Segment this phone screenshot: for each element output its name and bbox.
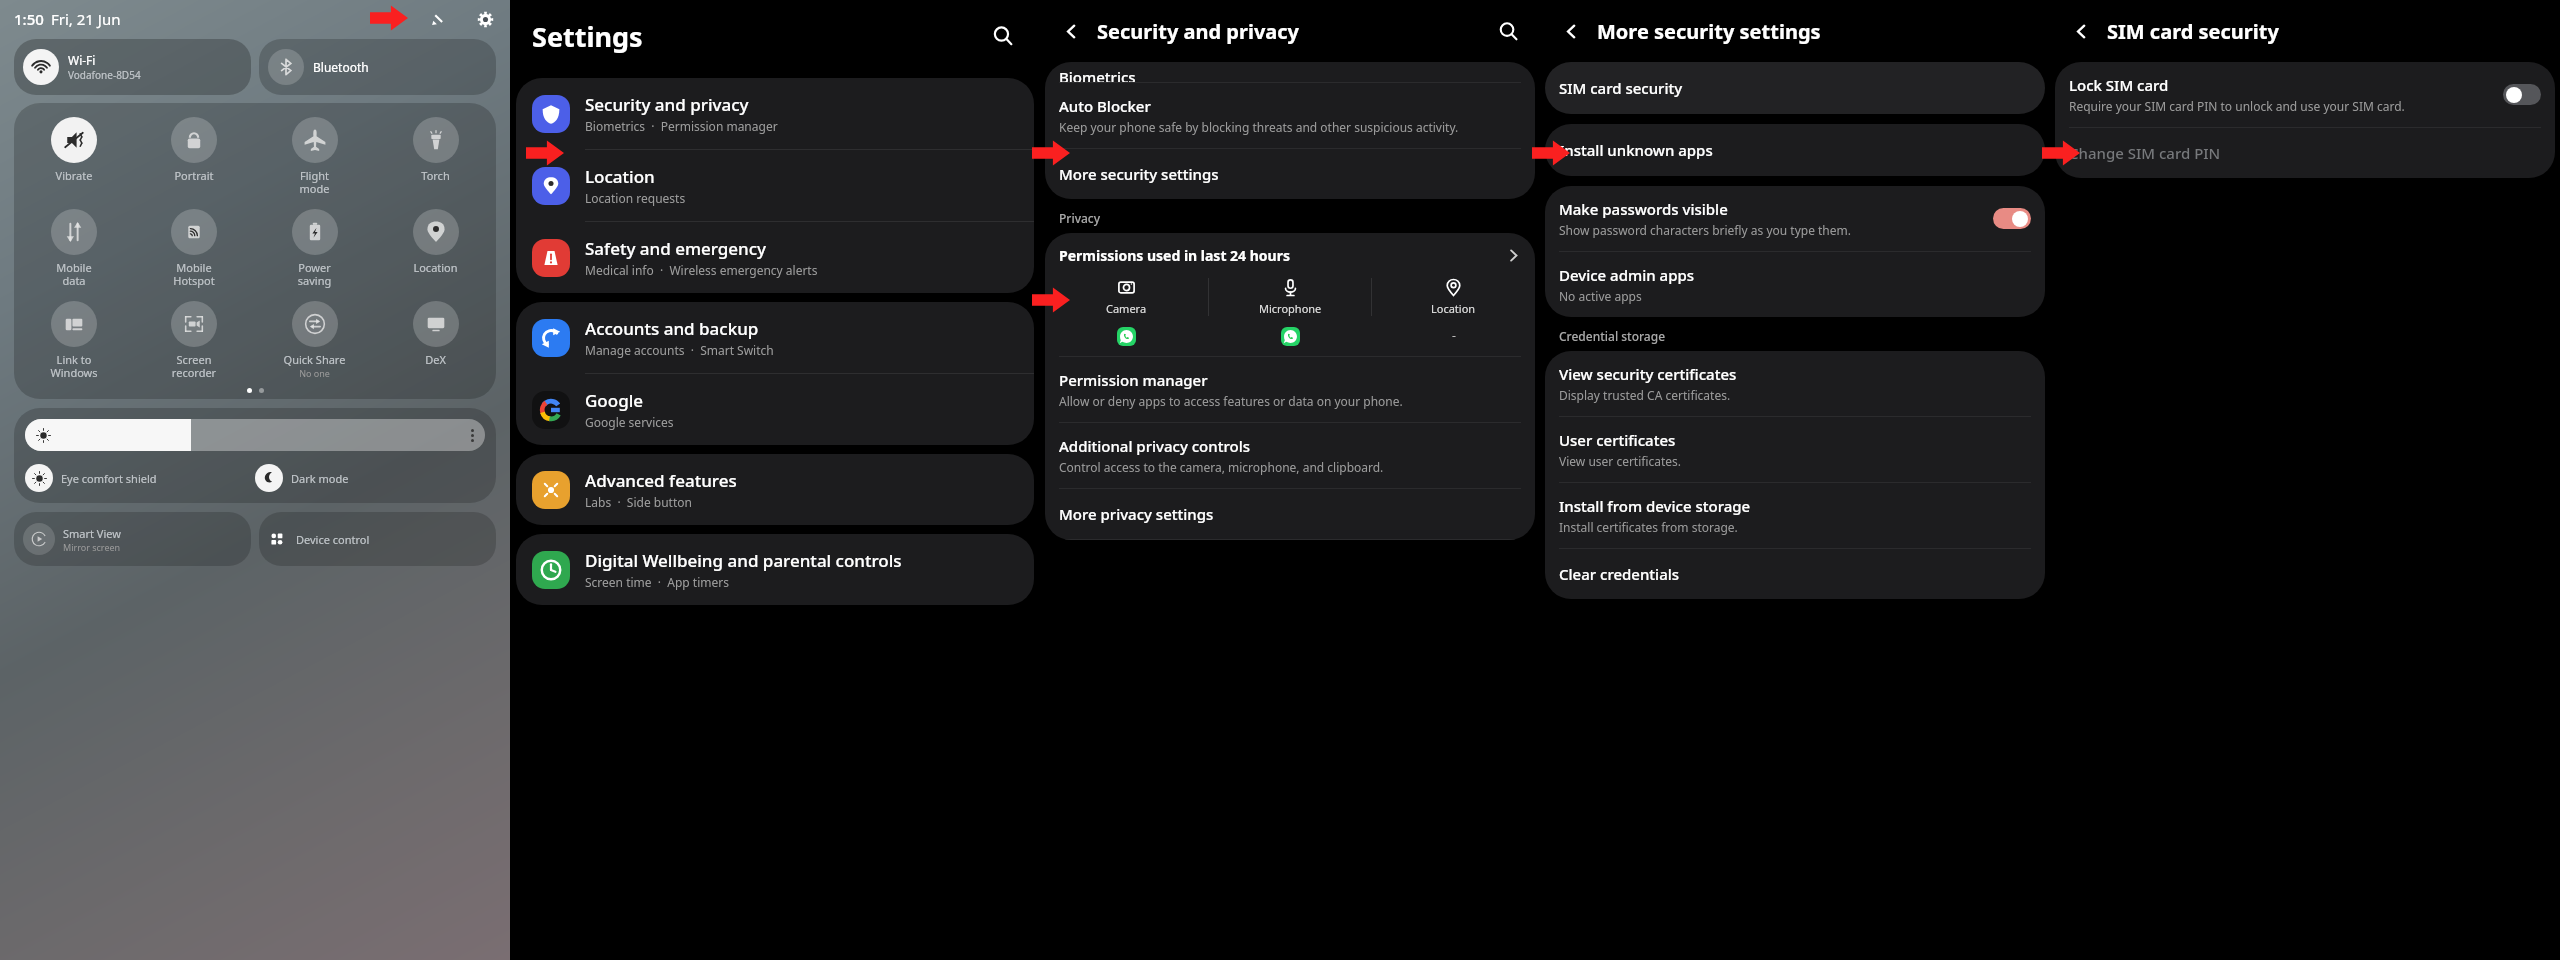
button[interactable]: Permission manager — [1045, 357, 1535, 423]
staticText: Permission manager — [1059, 370, 1208, 390]
staticText: Camera — [1106, 301, 1147, 316]
button[interactable]: Back — [1058, 18, 1084, 44]
button[interactable]: Settings — [474, 8, 496, 30]
staticText: Device admin apps — [1559, 265, 1695, 285]
button[interactable]: Device admin apps — [1545, 252, 2045, 317]
button[interactable]: Make passwords visible — [1545, 186, 2045, 252]
button[interactable]: Change SIM card PIN — [2055, 128, 2555, 178]
staticText: Google — [585, 389, 644, 412]
button[interactable]: Security and privacy — [516, 78, 1034, 150]
button[interactable]: Torch — [375, 115, 496, 185]
staticText: Additional privacy controls — [1059, 436, 1250, 456]
staticText: Labs · Side button — [585, 494, 692, 510]
button[interactable]: Clear credentials — [1545, 549, 2045, 599]
staticText: Credential storage — [1559, 328, 1666, 344]
staticText: SIM card security — [2107, 18, 2279, 45]
staticText: Location requests — [585, 190, 686, 206]
button[interactable]: View security certificates — [1545, 351, 2045, 417]
staticText: More privacy settings — [1059, 504, 1214, 524]
staticText: Change SIM card PIN — [2069, 143, 2221, 163]
button[interactable]: Smart View — [14, 512, 251, 566]
button[interactable]: Location — [516, 150, 1034, 222]
button[interactable]: Dark mode — [255, 464, 485, 492]
button[interactable]: Auto Blocker — [1045, 83, 1535, 149]
staticText: Google services — [585, 414, 674, 430]
button[interactable]: Location — [375, 207, 496, 277]
staticText: User certificates — [1559, 430, 1676, 450]
staticText: No active apps — [1559, 288, 1642, 304]
button[interactable]: Digital Wellbeing and parental controls — [516, 534, 1034, 605]
staticText: Show password characters briefly as you … — [1559, 222, 1851, 238]
button[interactable]: Google — [516, 374, 1034, 445]
button[interactable]: Screen recorder — [134, 299, 254, 382]
button[interactable]: Wi-Fi — [14, 39, 251, 95]
button[interactable]: Bluetooth — [259, 39, 496, 95]
staticText: Biometrics — [1059, 67, 1136, 87]
staticText: Torch — [375, 168, 496, 183]
button[interactable]: Link to Windows — [14, 299, 134, 382]
button[interactable]: Install unknown apps — [1545, 124, 2045, 176]
button[interactable]: User certificates — [1545, 417, 2045, 483]
button[interactable]: Device control — [259, 512, 496, 566]
staticText: Power saving — [254, 260, 375, 288]
staticText: Lock SIM card — [2069, 75, 2169, 95]
button[interactable]: Eye comfort shield — [25, 464, 255, 492]
staticText: Permissions used in last 24 hours — [1059, 246, 1506, 265]
staticText: Accounts and backup — [585, 317, 759, 340]
staticText: Vibrate — [14, 168, 134, 183]
button[interactable]: Location — [1372, 278, 1535, 343]
button[interactable]: SIM card security — [1545, 62, 2045, 114]
staticText: Smart View — [63, 526, 121, 541]
button[interactable]: Additional privacy controls — [1045, 423, 1535, 489]
button[interactable]: Toggle — [1993, 208, 2031, 229]
button[interactable]: Toggle — [2503, 84, 2541, 105]
button[interactable]: Quick Share — [254, 299, 375, 381]
staticText: View security certificates — [1559, 364, 1737, 384]
staticText: Install unknown apps — [1559, 140, 1713, 160]
button[interactable]: Edit quick settings — [426, 8, 448, 30]
button[interactable]: Power saving — [254, 207, 375, 290]
button[interactable]: Safety and emergency — [516, 222, 1034, 293]
button[interactable]: More security settings — [1045, 149, 1535, 199]
button[interactable]: Portrait — [134, 115, 254, 185]
button[interactable]: Advanced features — [516, 454, 1034, 525]
button[interactable]: DeX — [375, 299, 496, 369]
staticText: Privacy — [1059, 210, 1101, 226]
button[interactable]: Brightness — [25, 419, 485, 451]
staticText: Bluetooth — [313, 59, 369, 75]
staticText: Safety and emergency — [585, 237, 767, 260]
button[interactable]: Vibrate — [14, 115, 134, 185]
staticText: Fri, 21 Jun — [51, 9, 121, 29]
staticText: Control access to the camera, microphone… — [1059, 459, 1384, 475]
staticText: No one — [254, 367, 375, 379]
button[interactable]: Permissions used in last 24 hours — [1045, 233, 1535, 278]
staticText: Location — [585, 165, 655, 188]
staticText: Screen recorder — [134, 352, 254, 380]
staticText: Medical info · Wireless emergency alerts — [585, 262, 818, 278]
staticText: More security settings — [1059, 164, 1219, 184]
button[interactable]: More privacy settings — [1045, 489, 1535, 540]
button[interactable]: Flight mode — [254, 115, 375, 198]
staticText: Link to Windows — [14, 352, 134, 380]
staticText: Microphone — [1259, 301, 1322, 316]
button[interactable]: Search — [1494, 17, 1522, 45]
staticText: Mobile data — [14, 260, 134, 288]
staticText: Biometrics · Permission manager — [585, 118, 778, 134]
button[interactable]: Search — [988, 21, 1018, 51]
button[interactable]: Microphone — [1209, 278, 1371, 346]
staticText: Mirror screen — [63, 541, 121, 553]
button[interactable]: Accounts and backup — [516, 302, 1034, 374]
staticText: Display trusted CA certificates. — [1559, 387, 1731, 403]
button[interactable]: Camera — [1045, 278, 1208, 346]
button[interactable]: Mobile data — [14, 207, 134, 290]
button[interactable]: Back — [2068, 18, 2094, 44]
staticText: Location — [375, 260, 496, 275]
button[interactable]: Lock SIM card — [2055, 62, 2555, 128]
button[interactable]: Install from device storage — [1545, 483, 2045, 549]
staticText: Quick Share — [254, 352, 375, 367]
staticText: Make passwords visible — [1559, 199, 1728, 219]
button[interactable]: Mobile Hotspot — [134, 207, 254, 290]
staticText: Install from device storage — [1559, 496, 1751, 516]
button[interactable]: Back — [1558, 18, 1584, 44]
staticText: View user certificates. — [1559, 453, 1682, 469]
